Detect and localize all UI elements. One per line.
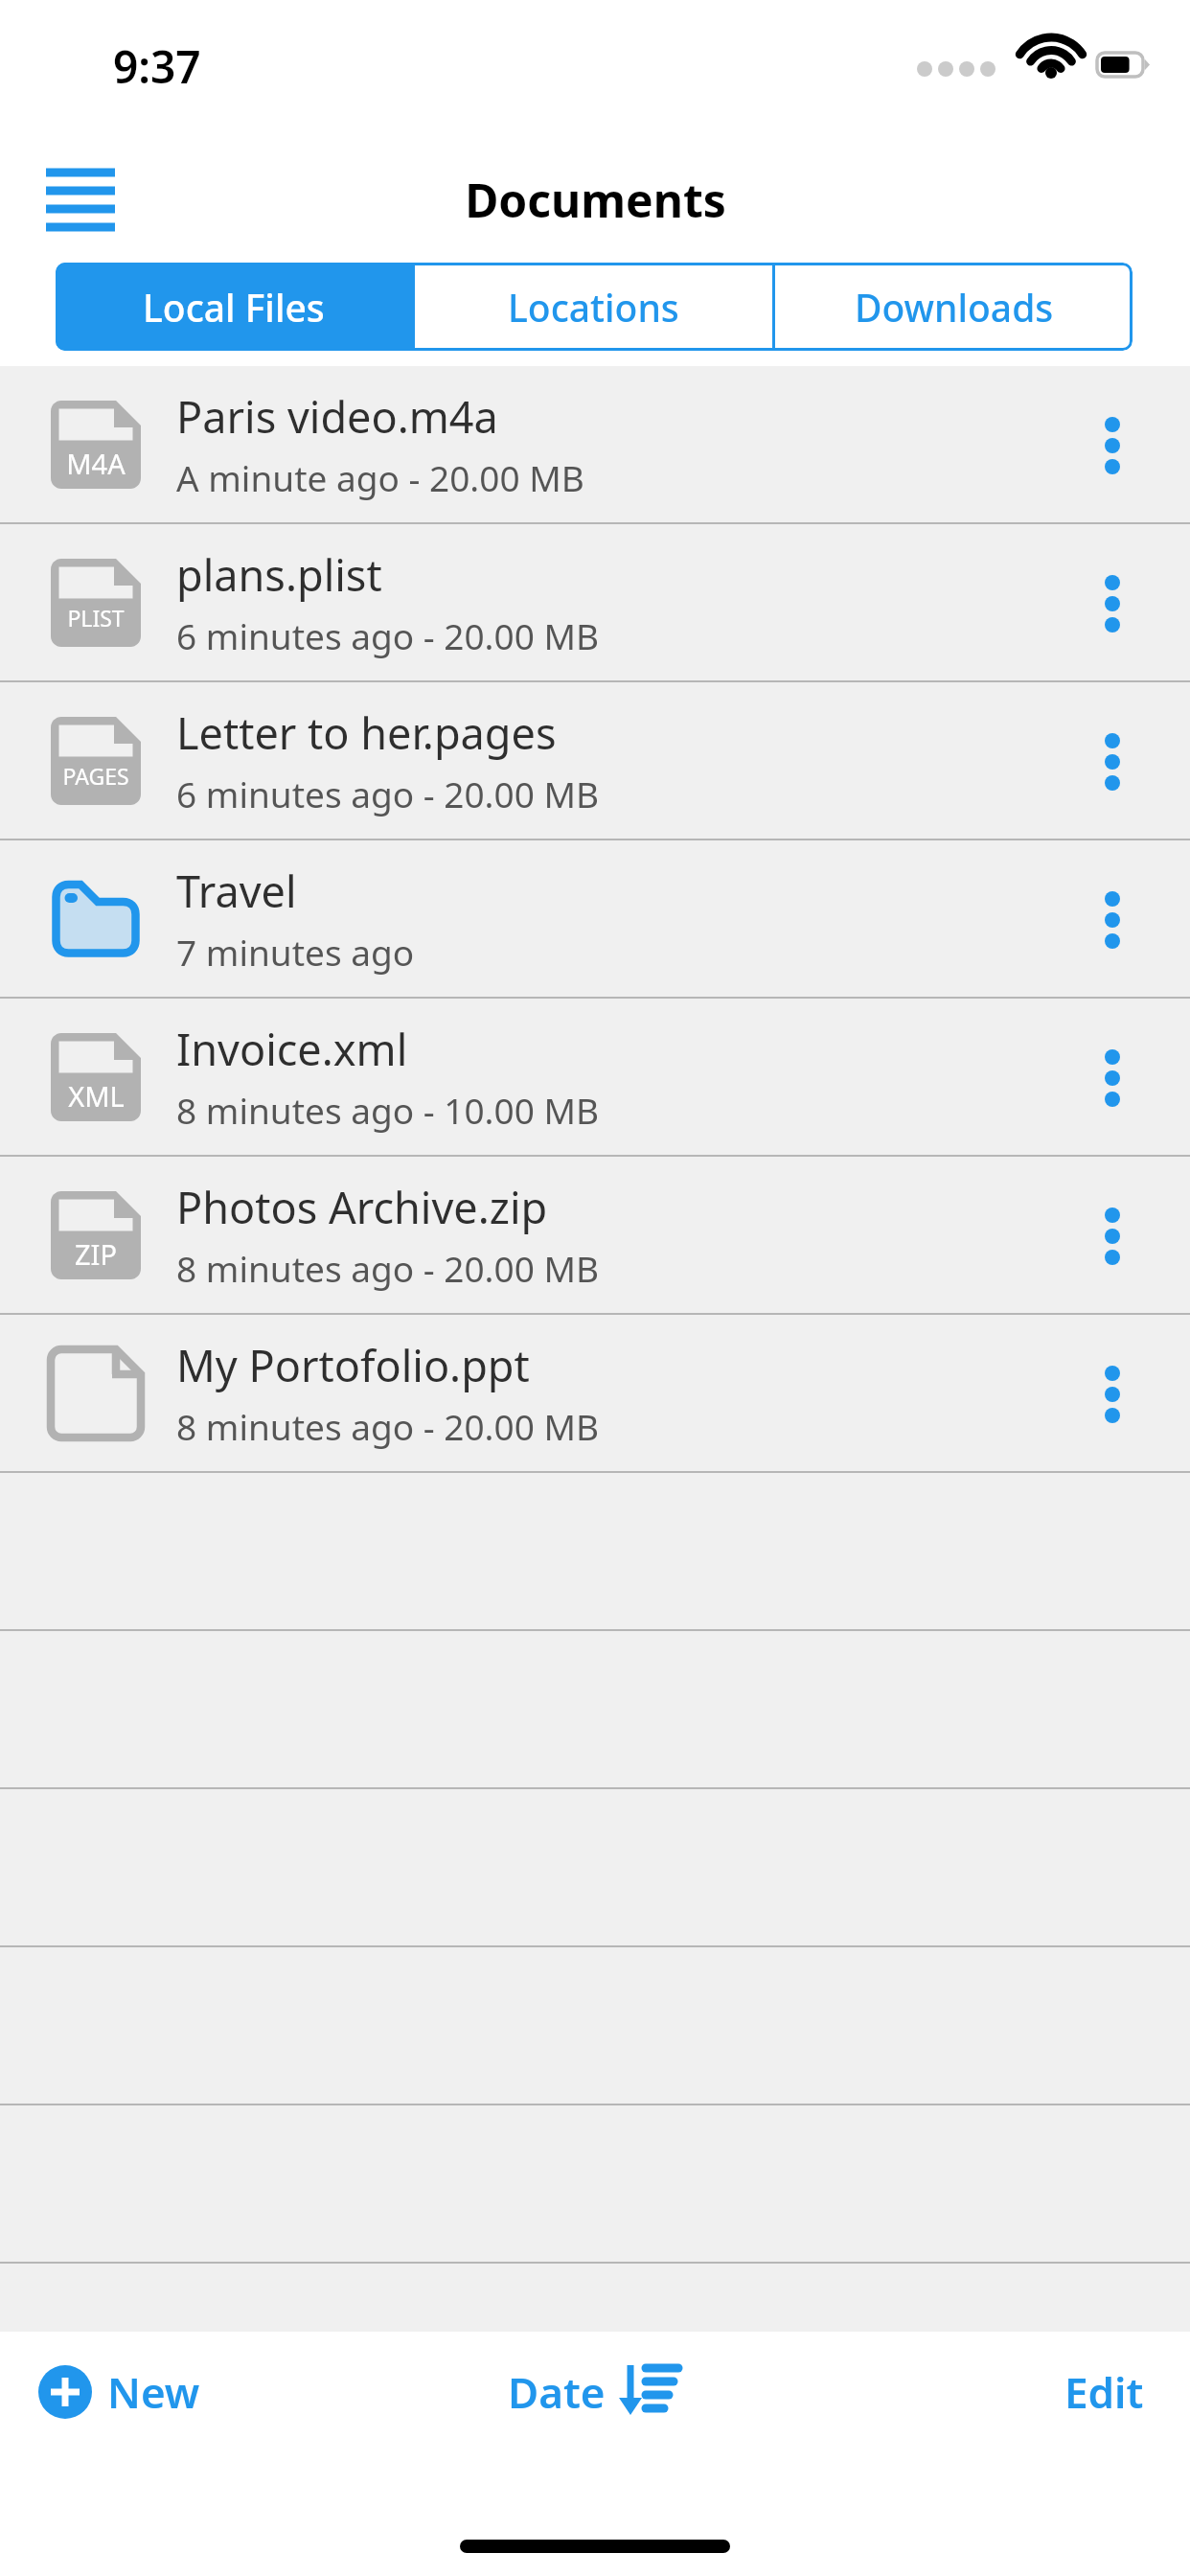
button[interactable]: Local Files xyxy=(56,263,412,351)
button[interactable]: PAGES xyxy=(0,682,1190,839)
staticText: Local Files xyxy=(143,282,325,333)
button[interactable]: More options xyxy=(1060,524,1165,680)
button[interactable]: More options xyxy=(1060,840,1165,997)
button[interactable]: PLIST xyxy=(0,524,1190,680)
staticText: A minute ago - 20.00 MB xyxy=(176,453,584,501)
button[interactable]: M4A xyxy=(0,366,1190,522)
staticText: Date xyxy=(508,2363,606,2421)
button[interactable]: More options xyxy=(1060,1157,1165,1313)
button[interactable]: My Portofolio.ppt xyxy=(0,1315,1190,1471)
button[interactable]: More options xyxy=(1060,999,1165,1155)
button[interactable]: Downloads xyxy=(775,263,1133,351)
staticText: M4A xyxy=(66,445,126,482)
staticText: 9:37 xyxy=(113,36,201,97)
staticText: Downloads xyxy=(855,282,1054,333)
button[interactable]: More options xyxy=(1060,1315,1165,1471)
staticText: Locations xyxy=(508,282,679,333)
staticText: Invoice.xml xyxy=(176,1020,408,1078)
button[interactable]: Edit xyxy=(1064,2339,1144,2445)
staticText: Letter to her.pages xyxy=(176,703,557,762)
staticText: XML xyxy=(68,1077,125,1115)
staticText: plans.plist xyxy=(176,545,382,604)
staticText: Documents xyxy=(465,169,726,231)
staticText: PAGES xyxy=(62,761,129,791)
button[interactable]: Menu xyxy=(23,155,138,246)
button[interactable]: New xyxy=(38,2339,200,2445)
staticText: 6 minutes ago - 20.00 MB xyxy=(176,611,600,659)
staticText: 7 minutes ago xyxy=(176,928,415,976)
staticText: ZIP xyxy=(75,1235,117,1273)
button[interactable]: Travel xyxy=(0,840,1190,997)
button[interactable]: Locations xyxy=(415,263,772,351)
staticText: 6 minutes ago - 20.00 MB xyxy=(176,770,600,817)
staticText: Travel xyxy=(176,862,297,920)
button[interactable]: More options xyxy=(1060,366,1165,522)
staticText: Photos Archive.zip xyxy=(176,1178,548,1236)
button[interactable]: XML xyxy=(0,999,1190,1155)
staticText: My Portofolio.ppt xyxy=(176,1336,530,1394)
staticText: PLIST xyxy=(67,603,125,632)
staticText: 8 minutes ago - 20.00 MB xyxy=(176,1402,600,1450)
button[interactable]: ZIP xyxy=(0,1157,1190,1313)
staticText: 8 minutes ago - 10.00 MB xyxy=(176,1086,600,1134)
staticText: 8 minutes ago - 20.00 MB xyxy=(176,1244,600,1292)
staticText: New xyxy=(107,2363,200,2421)
staticText: Paris video.m4a xyxy=(176,387,498,446)
button[interactable]: More options xyxy=(1060,682,1165,839)
button[interactable]: Date xyxy=(508,2339,682,2445)
staticText: Edit xyxy=(1064,2363,1144,2421)
